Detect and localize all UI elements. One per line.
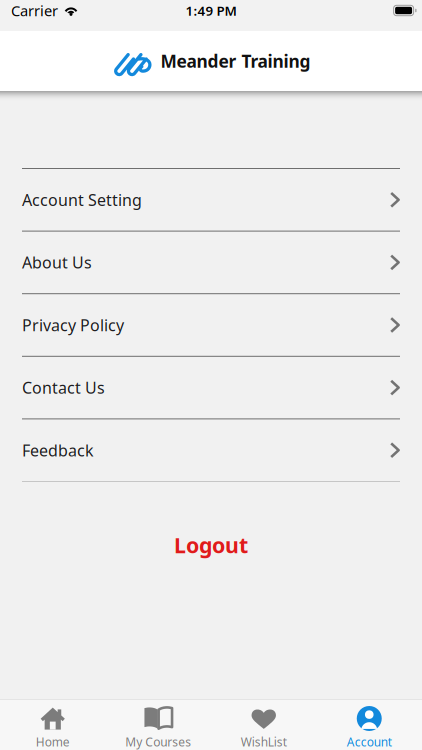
button[interactable]: Account Setting xyxy=(0,169,422,231)
staticText: Account Setting xyxy=(22,189,142,210)
staticText: Contact Us xyxy=(22,377,105,398)
button[interactable]: My Courses xyxy=(105,700,211,750)
button[interactable]: Logout xyxy=(0,530,422,560)
staticText: 1:49 PM xyxy=(185,2,236,19)
staticText: Carrier xyxy=(11,1,58,20)
button[interactable]: About Us xyxy=(0,232,422,293)
staticText: My Courses xyxy=(125,734,191,750)
staticText: WishList xyxy=(241,734,287,750)
staticText: Feedback xyxy=(22,440,94,461)
button[interactable]: Privacy Policy xyxy=(0,294,422,356)
button[interactable]: Feedback xyxy=(0,419,422,481)
button[interactable]: Home xyxy=(0,700,105,750)
staticText: About Us xyxy=(22,252,92,273)
staticText: Privacy Policy xyxy=(22,314,124,336)
button[interactable]: Account xyxy=(316,700,422,750)
staticText: Meander Training xyxy=(160,49,310,72)
button[interactable]: WishList xyxy=(211,700,316,750)
staticText: Home xyxy=(36,734,70,750)
button[interactable]: Contact Us xyxy=(0,357,422,418)
staticText: Logout xyxy=(174,531,248,559)
staticText: Account xyxy=(347,734,392,750)
